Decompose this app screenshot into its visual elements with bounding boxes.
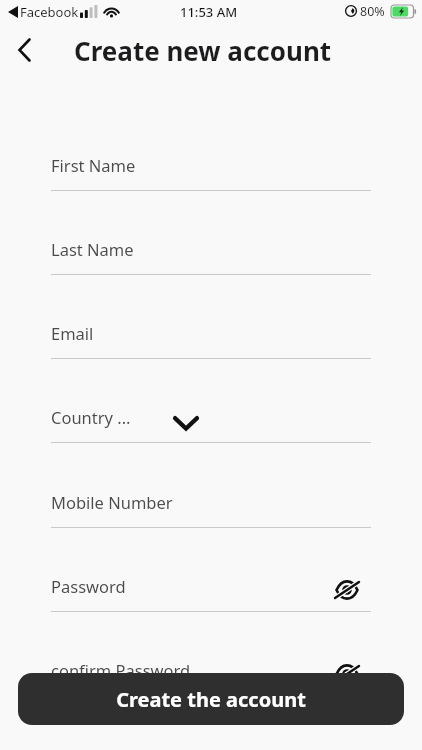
button[interactable]: Select country bbox=[168, 404, 204, 440]
button[interactable] bbox=[51, 236, 371, 276]
button[interactable] bbox=[51, 404, 371, 444]
button[interactable] bbox=[51, 320, 371, 360]
staticText: Facebook bbox=[20, 3, 79, 21]
staticText: Country ... bbox=[51, 406, 131, 428]
staticText: Password bbox=[51, 575, 126, 597]
staticText: Mobile Number bbox=[51, 491, 173, 513]
staticText: 11:53 AM bbox=[180, 3, 238, 21]
button[interactable] bbox=[51, 489, 371, 529]
button[interactable] bbox=[51, 657, 371, 697]
button[interactable]: Show password bbox=[328, 655, 366, 693]
staticText: Email bbox=[51, 322, 94, 344]
button[interactable]: Create the account bbox=[18, 673, 404, 725]
button[interactable]: Back bbox=[4, 30, 44, 70]
staticText: Create new account bbox=[74, 33, 332, 68]
staticText: confirm Password bbox=[51, 659, 191, 681]
button[interactable] bbox=[51, 573, 371, 613]
button[interactable]: Show password bbox=[328, 571, 366, 609]
staticText: First Name bbox=[51, 154, 136, 176]
staticText: Last Name bbox=[51, 238, 134, 260]
staticText: Create the account bbox=[116, 686, 306, 713]
button[interactable] bbox=[51, 152, 371, 192]
staticText: 80% bbox=[360, 3, 385, 20]
